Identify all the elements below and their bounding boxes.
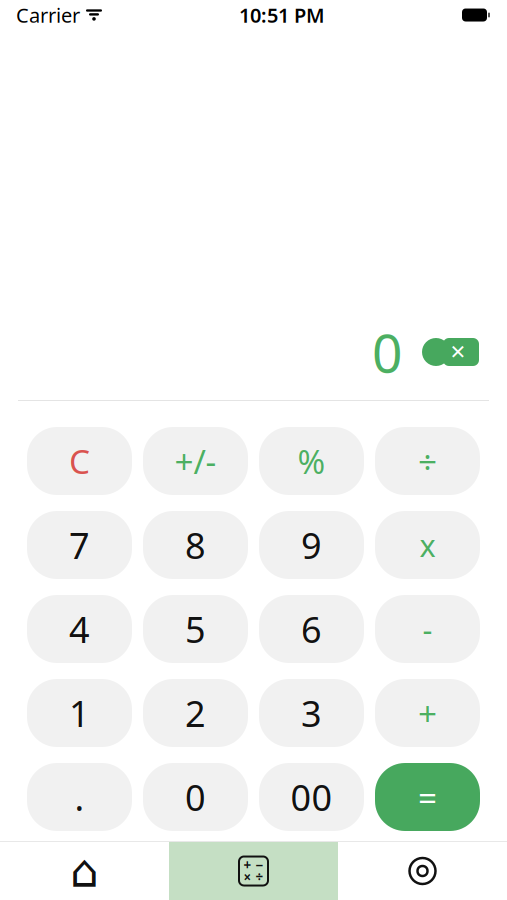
button[interactable]: ÷ — [375, 427, 480, 495]
staticText: − — [255, 856, 263, 874]
button[interactable]: x — [375, 511, 480, 579]
button[interactable]: . — [27, 763, 132, 831]
button[interactable]: 00 — [259, 763, 364, 831]
button[interactable]: +/- — [143, 427, 248, 495]
button[interactable]: % — [259, 427, 364, 495]
staticText: = — [418, 775, 437, 819]
staticText: 2 — [185, 689, 206, 737]
staticText: 5 — [185, 605, 206, 653]
button[interactable]: 5 — [143, 595, 248, 663]
staticText: 3 — [301, 689, 322, 737]
staticText: . — [74, 773, 84, 821]
staticText: 7 — [69, 521, 90, 569]
staticText: x — [419, 525, 435, 565]
staticText: + — [418, 691, 437, 735]
staticText: ⌂ — [70, 845, 99, 897]
button[interactable]: 2 — [143, 679, 248, 747]
staticText: 10:51 PM — [239, 2, 325, 28]
button[interactable]: 6 — [259, 595, 364, 663]
staticText: 9 — [301, 521, 322, 569]
staticText: + — [243, 856, 251, 874]
staticText: % — [297, 439, 325, 483]
button[interactable]: 1 — [27, 679, 132, 747]
staticText: - — [422, 609, 432, 649]
staticText: 0 — [185, 773, 206, 821]
button[interactable]: 9 — [259, 511, 364, 579]
staticText: ✕ — [449, 341, 466, 363]
button[interactable]: 4 — [27, 595, 132, 663]
staticText: × — [243, 868, 251, 886]
button[interactable]: 8 — [143, 511, 248, 579]
button[interactable]: - — [375, 595, 480, 663]
button[interactable]: 0 — [143, 763, 248, 831]
staticText: +/- — [174, 439, 216, 483]
staticText: 6 — [301, 605, 322, 653]
staticText: 1 — [69, 689, 90, 737]
staticText: C — [69, 439, 90, 483]
button[interactable]: C — [27, 427, 132, 495]
staticText: ÷ — [255, 868, 263, 886]
button[interactable]: Calculator — [169, 842, 338, 900]
button[interactable]: 3 — [259, 679, 364, 747]
staticText — [80, 3, 85, 26]
staticText: 0 — [372, 317, 403, 387]
staticText: 8 — [185, 521, 206, 569]
staticText: 4 — [69, 605, 90, 653]
button[interactable]: 7 — [27, 511, 132, 579]
staticText: ÷ — [418, 439, 437, 483]
button[interactable]: Delete — [429, 338, 479, 366]
staticText: Carrier — [16, 2, 80, 28]
button[interactable]: + — [375, 679, 480, 747]
button[interactable]: = — [375, 763, 480, 831]
button[interactable]: Home — [0, 842, 169, 900]
staticText: 00 — [290, 773, 332, 821]
button[interactable]: Settings — [338, 842, 507, 900]
